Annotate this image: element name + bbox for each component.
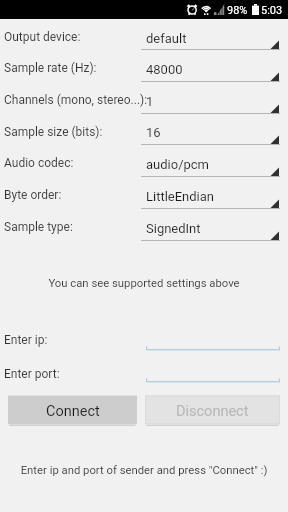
button[interactable]: Sample size (bits): <box>0 113 288 144</box>
staticText: Output device: <box>4 30 81 44</box>
staticText: 5:03 <box>261 4 283 17</box>
staticText: Audio codec: <box>4 156 74 170</box>
staticText: 48000 <box>146 62 183 77</box>
staticText: 1 <box>146 94 154 109</box>
staticText: audio/pcm <box>146 157 210 172</box>
button[interactable]: Audio codec: <box>0 144 288 176</box>
staticText: Byte order: <box>4 188 62 202</box>
staticText: Enter ip: <box>4 333 48 347</box>
button[interactable]: Output device: <box>0 19 288 49</box>
button[interactable]: Channels (mono, stereo...): <box>0 81 288 113</box>
staticText: Enter port: <box>4 367 60 381</box>
button[interactable]: Disconnect <box>145 395 280 426</box>
staticText: Connect <box>46 403 100 420</box>
button[interactable]: Connect <box>8 395 137 426</box>
staticText: Sample size (bits): <box>4 125 103 139</box>
staticText: 16 <box>146 125 161 140</box>
button[interactable]: Byte order: <box>0 176 288 208</box>
button[interactable]: Sample rate (Hz): <box>0 49 288 81</box>
staticText: Channels (mono, stereo...): <box>4 93 148 107</box>
staticText: Disconnect <box>176 403 249 420</box>
button[interactable]: Enter ip: <box>0 331 288 355</box>
button[interactable]: Enter port: <box>0 365 288 387</box>
staticText: Enter ip and port of sender and press "C… <box>0 464 288 477</box>
staticText: You can see supported settings above <box>0 277 288 290</box>
staticText: Sample rate (Hz): <box>4 61 97 75</box>
staticText: SignedInt <box>146 221 201 236</box>
staticText: default <box>146 31 187 46</box>
staticText: Sample type: <box>4 220 73 234</box>
button[interactable]: Sample type: <box>0 208 288 240</box>
staticText: 98% <box>227 4 248 17</box>
staticText: LittleEndian <box>146 189 215 204</box>
